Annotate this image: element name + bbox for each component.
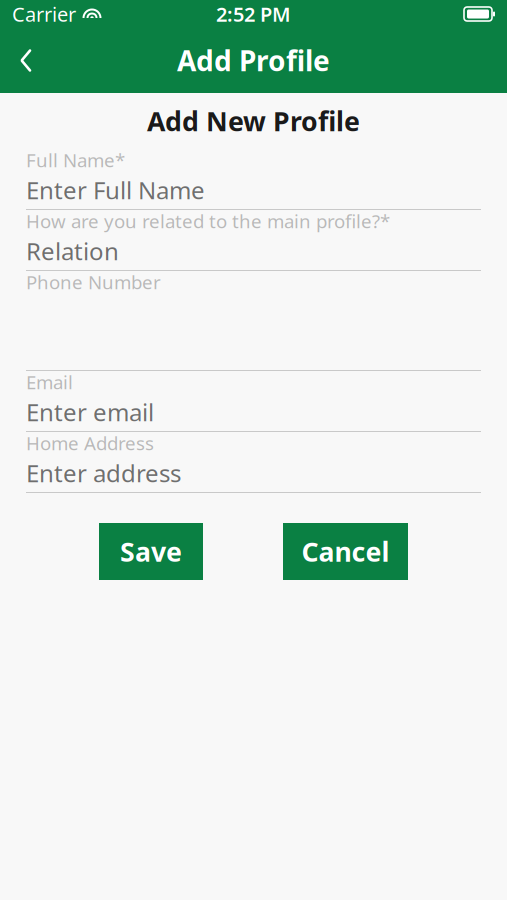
- staticText: Relation: [26, 235, 119, 267]
- staticText: Carrier: [12, 1, 76, 27]
- staticText: How are you related to the main profile?…: [26, 209, 390, 233]
- button[interactable]: Cancel: [283, 523, 408, 580]
- staticText: Add Profile: [177, 42, 330, 79]
- button[interactable]: How are you related to the main profile?…: [26, 210, 481, 271]
- staticText: Email: [26, 370, 73, 394]
- button[interactable]: Back: [0, 36, 52, 84]
- button[interactable]: Phone Number: [26, 271, 481, 371]
- staticText: Cancel: [301, 534, 389, 569]
- button[interactable]: Save: [99, 523, 203, 580]
- staticText: Phone Number: [26, 270, 161, 294]
- button[interactable]: Home Address: [26, 432, 481, 493]
- button[interactable]: Email: [26, 371, 481, 432]
- staticText: Enter email: [26, 396, 154, 428]
- staticText: Save: [120, 534, 182, 569]
- staticText: Enter address: [26, 457, 181, 489]
- staticText: 2:52 PM: [216, 1, 291, 27]
- button[interactable]: Full Name*: [26, 149, 481, 210]
- staticText: Home Address: [26, 431, 154, 455]
- staticText: Add New Profile: [147, 103, 360, 139]
- staticText: Enter Full Name: [26, 174, 205, 206]
- staticText: Full Name*: [26, 148, 125, 172]
